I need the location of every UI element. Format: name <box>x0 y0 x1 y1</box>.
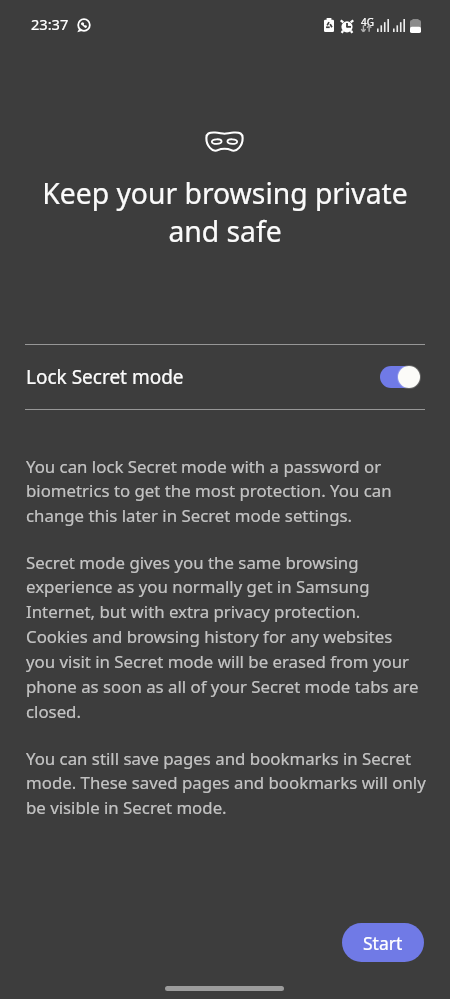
staticText: Start <box>363 931 403 955</box>
button[interactable]: Start <box>342 923 424 962</box>
staticText: You can still save pages and bookmarks i… <box>26 747 426 819</box>
staticText: 23:37 <box>31 14 69 34</box>
button[interactable]: Lock Secret mode <box>380 362 424 392</box>
other: WhatsApp notification <box>77 18 91 32</box>
staticText: You can lock Secret mode with a password… <box>26 455 392 527</box>
staticText: Keep your browsing private and safe <box>22 174 428 250</box>
button[interactable]: Lock Secret mode <box>0 345 450 409</box>
staticText: Secret mode gives you the same browsing … <box>26 551 419 723</box>
staticText: 4G <box>361 15 374 29</box>
staticText: Lock Secret mode <box>26 364 380 390</box>
